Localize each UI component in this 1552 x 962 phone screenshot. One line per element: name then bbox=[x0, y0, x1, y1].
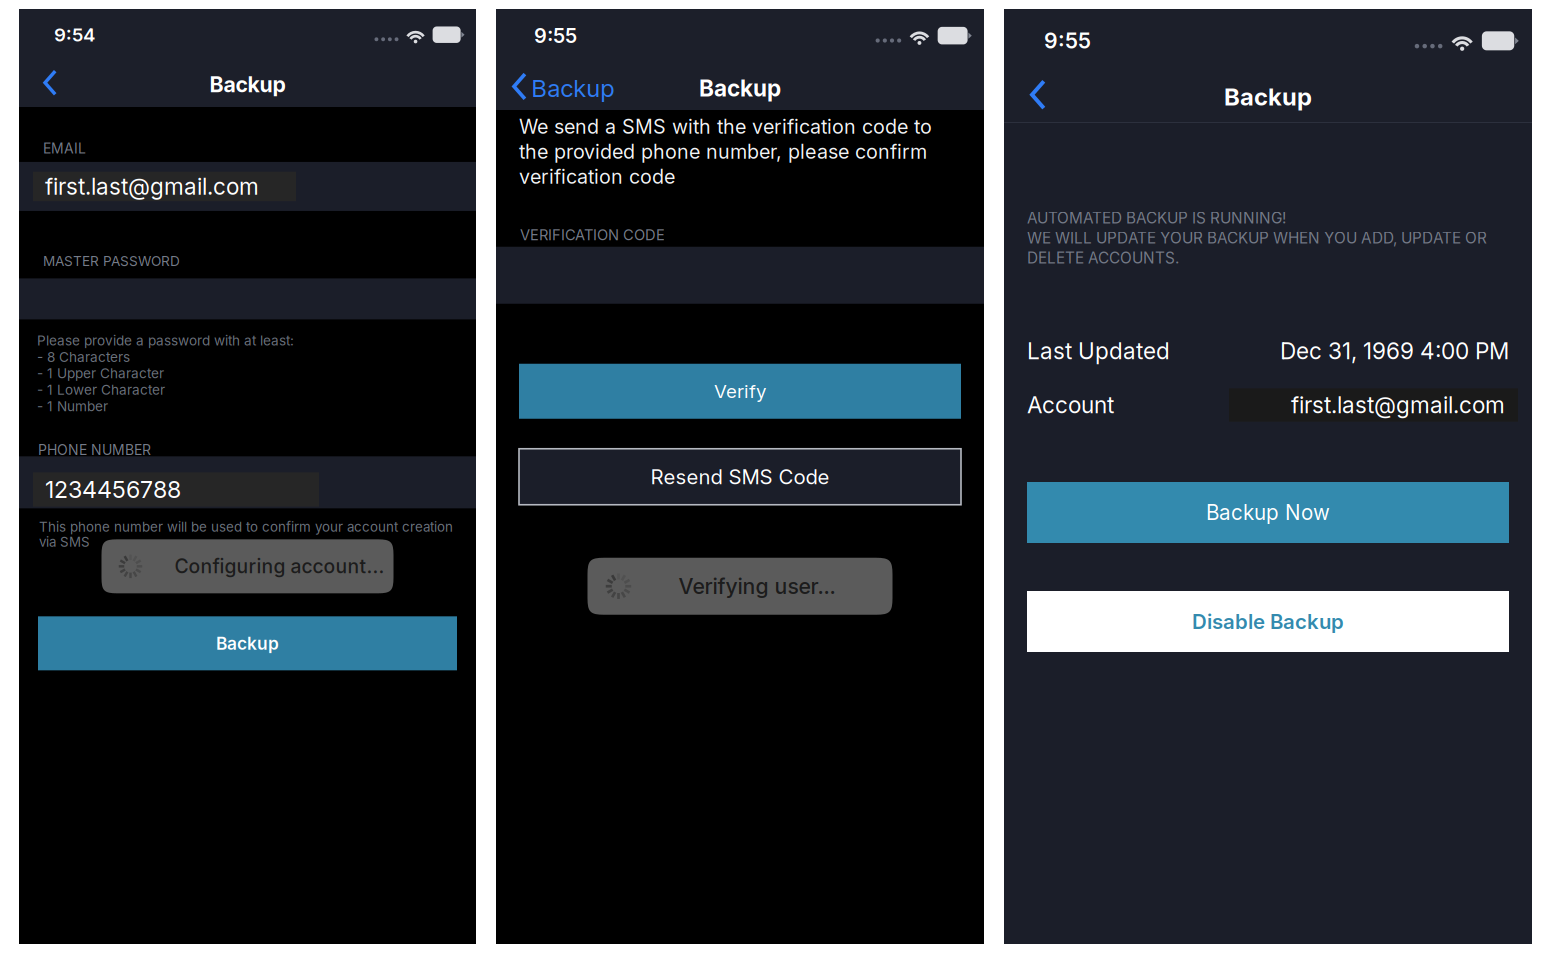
staticText: Resend SMS Code bbox=[650, 464, 829, 489]
staticText: MASTER PASSWORD bbox=[43, 253, 180, 269]
staticText: - 1 Number bbox=[37, 398, 108, 414]
staticText: Disable Backup bbox=[1192, 609, 1344, 634]
staticText: Verifying user... bbox=[678, 573, 835, 599]
staticText: Backup bbox=[209, 71, 285, 97]
staticText: verification code bbox=[519, 165, 675, 188]
staticText: 9:54 bbox=[54, 23, 95, 46]
staticText: via SMS bbox=[39, 534, 90, 550]
staticText: WE WILL UPDATE YOUR BACKUP WHEN YOU ADD,… bbox=[1027, 229, 1487, 247]
staticText: Verify bbox=[714, 380, 766, 403]
staticText: This phone number will be used to confir… bbox=[39, 519, 453, 535]
button[interactable]: Backup bbox=[38, 616, 457, 670]
staticText: Backup bbox=[531, 74, 614, 103]
staticText: DELETE ACCOUNTS. bbox=[1027, 249, 1179, 267]
staticText: Dec 31, 1969 4:00 PM bbox=[1280, 337, 1509, 365]
button[interactable]: Disable Backup bbox=[1027, 591, 1509, 652]
staticText: first.last@gmail.com bbox=[1291, 391, 1505, 419]
staticText: Backup bbox=[1224, 82, 1312, 111]
staticText: 9:55 bbox=[1044, 28, 1091, 54]
button[interactable]: Back bbox=[19, 64, 71, 104]
staticText: Account bbox=[1027, 391, 1114, 419]
staticText: PHONE NUMBER bbox=[38, 441, 151, 458]
button[interactable]: Back bbox=[1004, 74, 1062, 120]
staticText: the provided phone number, please confir… bbox=[519, 140, 927, 163]
button[interactable]: Backup Now bbox=[1027, 482, 1509, 543]
staticText: 1234456788 bbox=[45, 475, 181, 503]
staticText: Backup bbox=[216, 633, 279, 654]
staticText: Please provide a password with at least: bbox=[37, 332, 294, 349]
staticText: - 1 Upper Character bbox=[37, 365, 164, 382]
staticText: Backup bbox=[699, 75, 781, 102]
staticText: Last Updated bbox=[1027, 337, 1170, 365]
staticText: AUTOMATED BACKUP IS RUNNING! bbox=[1027, 209, 1286, 227]
staticText: - 8 Characters bbox=[37, 349, 130, 365]
staticText: Backup Now bbox=[1206, 500, 1330, 525]
staticText: - 1 Lower Character bbox=[37, 382, 165, 398]
staticText: VERIFICATION CODE bbox=[520, 226, 665, 244]
staticText: EMAIL bbox=[43, 140, 86, 157]
button[interactable]: Resend SMS Code bbox=[519, 449, 961, 505]
button[interactable]: Verify bbox=[519, 364, 961, 419]
staticText: We send a SMS with the verification code… bbox=[519, 115, 932, 138]
staticText: Configuring account... bbox=[174, 555, 384, 578]
staticText: 9:55 bbox=[534, 23, 577, 48]
button[interactable]: Back bbox=[496, 67, 627, 109]
staticText: first.last@gmail.com bbox=[45, 173, 259, 200]
